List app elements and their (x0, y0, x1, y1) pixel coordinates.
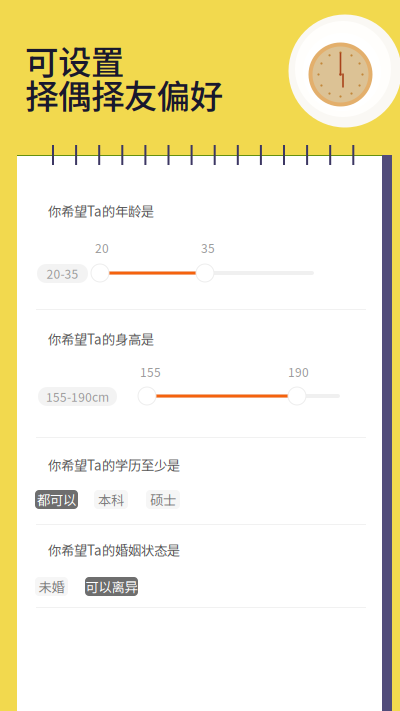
staticText: 20-35 (46, 265, 78, 282)
button[interactable]: 未婚 (35, 577, 68, 596)
staticText: 你希望Ta的学历至少是 (48, 455, 180, 474)
staticText: 你希望Ta的年龄是 (48, 201, 154, 220)
staticText: 155 (140, 363, 161, 380)
button[interactable]: 本科 (94, 490, 128, 509)
staticText: 本科 (98, 490, 124, 509)
staticText: 择偶择友偏好 (25, 70, 223, 118)
staticText: 你希望Ta的身高是 (48, 329, 154, 348)
button[interactable]: 硕士 (146, 490, 180, 509)
staticText: 未婚 (38, 577, 64, 596)
button[interactable]: 可以离异 (85, 577, 138, 596)
staticText: 都可以 (37, 490, 76, 509)
button[interactable]: 都可以 (35, 490, 78, 509)
staticText: 20 (95, 239, 109, 256)
staticText: 硕士 (150, 490, 176, 509)
staticText: 155-190cm (46, 388, 109, 405)
staticText: 你希望Ta的婚姻状态是 (48, 540, 180, 559)
staticText: 可以离异 (85, 577, 137, 596)
staticText: 35 (201, 239, 215, 256)
staticText: 可设置 (25, 36, 124, 84)
staticText: 190 (288, 363, 309, 380)
